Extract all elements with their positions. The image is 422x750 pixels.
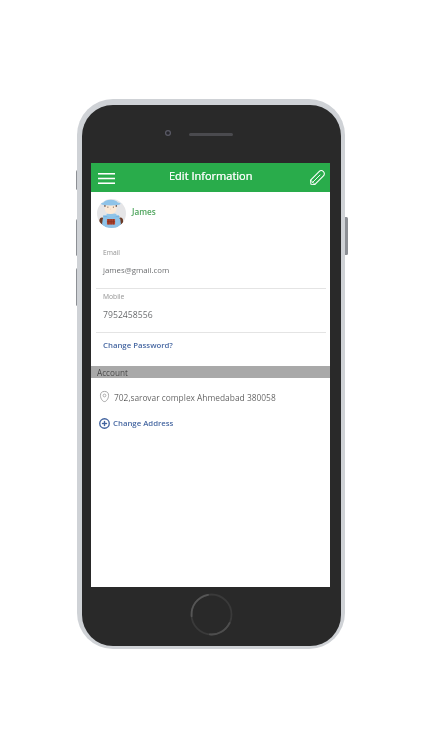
staticText: 7952458556 [103, 309, 153, 321]
staticText: 702,sarovar complex Ahmedabad 380058 [114, 392, 276, 403]
staticText: james@gmail.com [103, 265, 170, 276]
staticText: Edit Information [169, 168, 253, 183]
button[interactable]: Open navigation menu [95, 167, 118, 190]
staticText: Change Address [113, 418, 174, 429]
button[interactable]: Change Address [91, 413, 330, 435]
staticText: Change Password? [103, 340, 173, 351]
button[interactable]: Edit profile [306, 167, 327, 188]
staticText: Email [103, 248, 121, 257]
button[interactable]: Change Password? [91, 333, 330, 366]
staticText: Account [97, 367, 128, 378]
staticText: James [132, 206, 156, 217]
staticText: Mobile [103, 292, 125, 301]
